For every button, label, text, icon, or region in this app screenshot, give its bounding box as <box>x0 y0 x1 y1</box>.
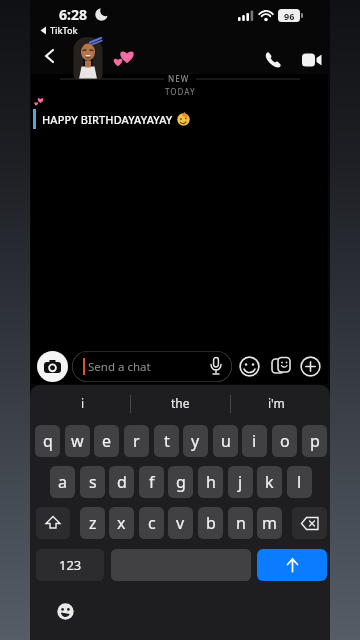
staticText: TikTok <box>50 24 78 36</box>
button[interactable] <box>296 46 328 74</box>
button[interactable]: HAPPY BIRTHDAYAYAYAY <box>33 109 191 129</box>
staticText: q <box>43 430 53 452</box>
button[interactable]: h <box>198 466 223 498</box>
staticText: o <box>280 430 290 452</box>
button[interactable] <box>238 355 261 378</box>
staticText: k <box>265 471 274 493</box>
button[interactable]: i'm <box>268 395 285 411</box>
staticText: TODAY <box>165 86 196 97</box>
staticText: b <box>206 512 216 534</box>
button[interactable] <box>292 507 327 539</box>
staticText: 96 <box>284 10 295 22</box>
staticText: e <box>102 430 112 452</box>
button[interactable]: k <box>257 466 282 498</box>
button[interactable]: w <box>65 425 90 457</box>
button[interactable] <box>257 549 327 581</box>
staticText: 6:28 <box>59 5 87 24</box>
button[interactable] <box>113 48 135 68</box>
staticText: v <box>176 512 185 534</box>
staticText: a <box>58 471 67 493</box>
staticText: y <box>191 430 200 452</box>
button[interactable]: y <box>183 425 208 457</box>
button[interactable]: 123 <box>36 549 104 581</box>
button[interactable]: l <box>287 466 312 498</box>
button[interactable] <box>258 46 288 74</box>
button[interactable]: e <box>94 425 119 457</box>
button[interactable]: d <box>109 466 134 498</box>
staticText: l <box>297 471 302 493</box>
staticText: Send a chat <box>88 359 151 375</box>
staticText: x <box>117 512 126 534</box>
staticText: t <box>164 430 170 452</box>
button[interactable]: z <box>80 507 105 539</box>
staticText: d <box>117 471 127 493</box>
button[interactable]: x <box>109 507 134 539</box>
button[interactable] <box>55 601 75 621</box>
staticText: s <box>89 471 97 493</box>
button[interactable]: i <box>242 425 267 457</box>
button[interactable]: q <box>35 425 60 457</box>
button[interactable] <box>40 46 58 66</box>
button[interactable]: Send a chat <box>72 351 232 382</box>
button[interactable]: c <box>139 507 164 539</box>
staticText: i <box>252 430 257 452</box>
staticText: u <box>221 430 231 452</box>
button[interactable] <box>269 354 293 378</box>
button[interactable]: i <box>81 395 85 411</box>
button[interactable] <box>36 507 70 539</box>
staticText: c <box>148 512 156 534</box>
button[interactable]: the <box>171 395 190 411</box>
button[interactable]: u <box>213 425 238 457</box>
button[interactable]: g <box>168 466 193 498</box>
staticText: HAPPY BIRTHDAYAYAYAY <box>42 112 173 127</box>
staticText: 123 <box>59 556 82 574</box>
staticText: p <box>310 430 320 452</box>
button[interactable]: j <box>228 466 253 498</box>
staticText: r <box>133 430 140 452</box>
staticText: j <box>238 471 243 493</box>
staticText: h <box>206 471 216 493</box>
staticText: g <box>176 471 186 493</box>
button[interactable]: s <box>80 466 105 498</box>
button[interactable] <box>37 351 68 382</box>
staticText: w <box>71 430 84 452</box>
staticText: f <box>149 471 155 493</box>
staticText: n <box>236 512 246 534</box>
button[interactable]: m <box>257 507 282 539</box>
button[interactable]: b <box>198 507 223 539</box>
button[interactable]: TikTok <box>40 24 78 36</box>
staticText: NEW <box>168 73 190 84</box>
staticText: z <box>89 512 97 534</box>
button[interactable]: r <box>124 425 149 457</box>
button[interactable]: p <box>302 425 327 457</box>
button[interactable]: n <box>228 507 253 539</box>
button[interactable] <box>299 355 322 378</box>
button[interactable]: o <box>272 425 297 457</box>
button[interactable]: a <box>50 466 75 498</box>
button[interactable]: f <box>139 466 164 498</box>
button[interactable]: v <box>168 507 193 539</box>
button[interactable]: t <box>154 425 179 457</box>
staticText: m <box>262 512 277 534</box>
